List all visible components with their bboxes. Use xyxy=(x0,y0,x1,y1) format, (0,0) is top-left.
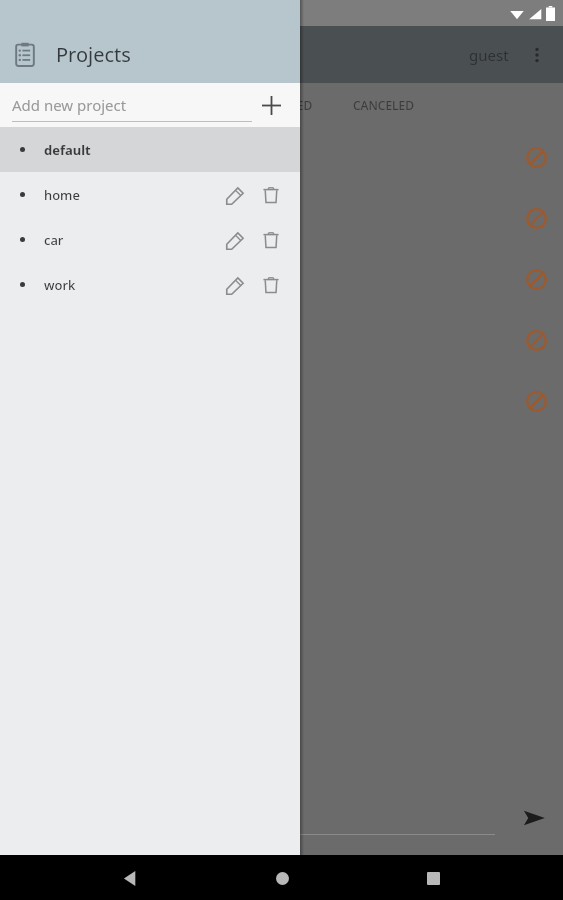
button[interactable]: Back xyxy=(108,856,152,900)
button[interactable]: Cancel xyxy=(522,326,550,354)
staticText: TED xyxy=(290,97,313,113)
button[interactable]: Cancel xyxy=(522,265,550,293)
staticText: default xyxy=(44,141,91,159)
button[interactable]: Delete car xyxy=(254,223,288,257)
button[interactable]: Cancel xyxy=(522,143,550,171)
button[interactable]: Cancel xyxy=(522,204,550,232)
button[interactable]: More options xyxy=(523,41,551,69)
button[interactable]: Edit home xyxy=(218,178,252,212)
button[interactable]: default xyxy=(0,127,300,172)
staticText: car xyxy=(44,231,64,249)
button[interactable]: Add new project xyxy=(12,88,252,122)
button[interactable]: car xyxy=(0,217,300,262)
button[interactable]: Cancel xyxy=(522,387,550,415)
staticText: Add new project xyxy=(12,95,127,115)
button[interactable]: Recent apps xyxy=(411,856,455,900)
button[interactable]: work xyxy=(0,262,300,307)
button[interactable]: Send xyxy=(517,801,551,835)
staticText: home xyxy=(44,186,80,204)
button[interactable]: home xyxy=(0,172,300,217)
button[interactable]: Home xyxy=(260,856,304,900)
staticText: Projects xyxy=(56,41,131,68)
button[interactable]: Add project xyxy=(256,90,286,120)
button[interactable]: Edit car xyxy=(218,223,252,257)
button[interactable]: Delete home xyxy=(254,178,288,212)
staticText: work xyxy=(44,276,76,294)
button[interactable]: Edit work xyxy=(218,268,252,302)
staticText: guest xyxy=(469,45,509,65)
staticText: CANCELED xyxy=(353,97,414,113)
button[interactable]: Delete work xyxy=(254,268,288,302)
